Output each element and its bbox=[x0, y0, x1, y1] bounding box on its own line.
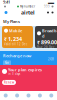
staticText: in 3 days bbox=[8, 72, 20, 76]
staticText: 9:41 bbox=[3, 0, 10, 5]
staticText: ₹ 899.00 bbox=[37, 39, 57, 46]
staticText: ₹ 1,234 bbox=[4, 35, 22, 42]
staticText: Your plan expires bbox=[8, 67, 42, 72]
button[interactable]: Mobile bbox=[2, 26, 33, 48]
button[interactable]: Profile bbox=[50, 9, 55, 16]
button[interactable]: Account bbox=[2, 4, 8, 9]
button[interactable]: Shop bbox=[11, 91, 23, 100]
staticText: Due 20 Dec bbox=[37, 46, 54, 49]
staticText: Mobile bbox=[9, 28, 22, 33]
button[interactable]: Go bbox=[3, 60, 11, 65]
button[interactable]: Search bbox=[46, 9, 50, 16]
staticText: My number bbox=[20, 5, 35, 8]
button[interactable]: Renew bbox=[2, 80, 16, 85]
button[interactable]: Pay bbox=[23, 91, 34, 100]
staticText: Renew bbox=[4, 81, 14, 84]
staticText: Valid till 12 Dec bbox=[4, 42, 27, 46]
staticText: My Plans bbox=[3, 19, 20, 24]
staticText: 999 bbox=[44, 5, 50, 8]
button[interactable]: Home bbox=[0, 91, 11, 100]
staticText: Broadband bbox=[42, 28, 57, 39]
staticText: Recharge now bbox=[3, 53, 31, 58]
button[interactable]: Menu bbox=[2, 9, 10, 16]
button[interactable]: More bbox=[46, 91, 57, 100]
button[interactable]: Notifications bbox=[50, 4, 55, 9]
staticText: airtel bbox=[21, 9, 35, 16]
staticText: ▃▃ bbox=[48, 0, 54, 4]
staticText: 2GB bbox=[48, 57, 54, 61]
button[interactable]: Help bbox=[34, 91, 46, 100]
staticText: Go bbox=[5, 61, 9, 64]
button[interactable]: Broadband bbox=[35, 26, 57, 48]
